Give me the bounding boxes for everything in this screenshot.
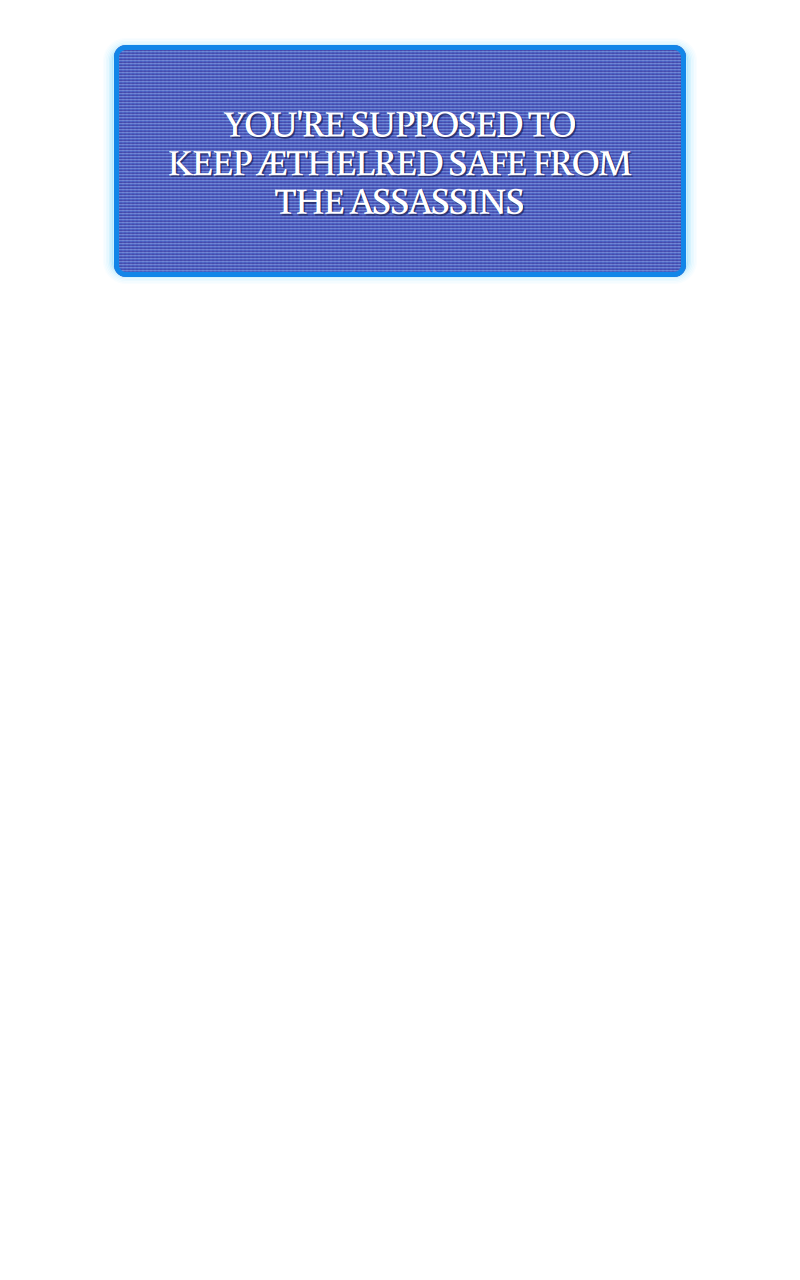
staticText: KEEP ÆTHELRED SAFE FROM — [169, 138, 634, 187]
staticText: YOU'RE SUPPOSED TO — [224, 98, 576, 147]
staticText: THE ASSASSINS — [276, 177, 527, 225]
staticText: THE ASSASSINS — [275, 175, 525, 224]
staticText: KEEP ÆTHELRED SAFE FROM — [167, 137, 633, 185]
staticText: YOU'RE SUPPOSED TO — [225, 100, 578, 148]
button[interactable]: YOU'RE SUPPOSED TO — [114, 49, 686, 273]
